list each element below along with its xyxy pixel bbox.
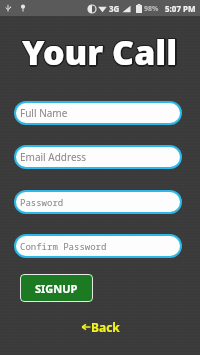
staticText: SIGNUP: [35, 281, 78, 296]
staticText: Email Address: [20, 150, 87, 164]
staticText: Your Call: [21, 30, 177, 76]
button[interactable]: SIGNUP: [20, 274, 93, 302]
staticText: Your Call: [24, 29, 180, 75]
staticText: 3G: [109, 3, 120, 14]
staticText: Password: [20, 196, 64, 208]
button[interactable]: Password: [14, 190, 182, 214]
staticText: Your Call: [23, 28, 179, 74]
staticText: Confirm Password: [20, 240, 107, 252]
staticText: 5:07 PM: [165, 3, 196, 14]
button[interactable]: Full Name: [14, 101, 182, 125]
staticText: Your Call: [22, 28, 178, 74]
button[interactable]: Back: [75, 317, 126, 337]
staticText: 98%: [144, 4, 159, 14]
staticText: Your Call: [21, 29, 177, 75]
staticText: Back: [91, 319, 120, 335]
staticText: Your Call: [23, 30, 179, 76]
staticText: Your Call: [22, 31, 178, 77]
button[interactable]: Confirm Password: [14, 234, 182, 258]
staticText: Your Call: [22, 29, 178, 75]
staticText: Full Name: [20, 106, 68, 120]
staticText: Your Call: [21, 28, 177, 74]
button[interactable]: Email Address: [14, 145, 182, 169]
